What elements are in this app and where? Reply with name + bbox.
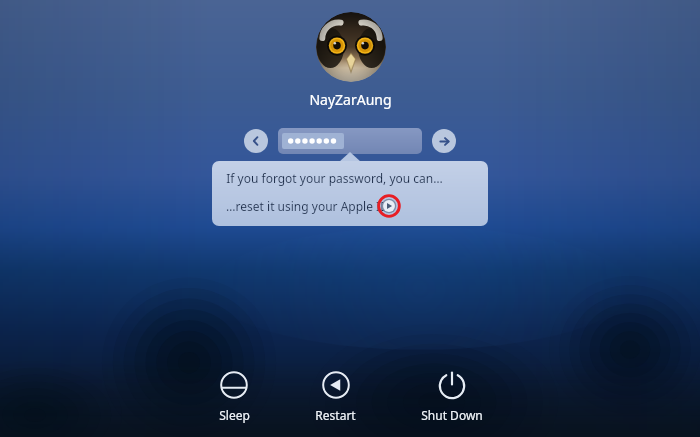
staticText: Shut Down — [421, 407, 483, 423]
staticText: Restart — [315, 407, 356, 423]
button[interactable]: User picture — [316, 12, 386, 82]
button[interactable]: Sleep — [212, 367, 256, 425]
button[interactable] — [278, 128, 422, 154]
button[interactable]: Reset password — [378, 195, 400, 217]
staticText: …reset it using your Apple ID — [226, 198, 389, 214]
button[interactable]: Shut Down — [415, 367, 489, 425]
button[interactable]: Restart — [309, 367, 362, 425]
staticText: Sleep — [219, 407, 250, 423]
button[interactable]: Back — [244, 129, 268, 153]
button[interactable]: Log in — [432, 129, 456, 153]
staticText: NayZarAung — [309, 90, 392, 109]
staticText: If you forgot your password, you can… — [226, 170, 443, 186]
button[interactable]: If you forgot your password, you can… — [212, 161, 488, 226]
